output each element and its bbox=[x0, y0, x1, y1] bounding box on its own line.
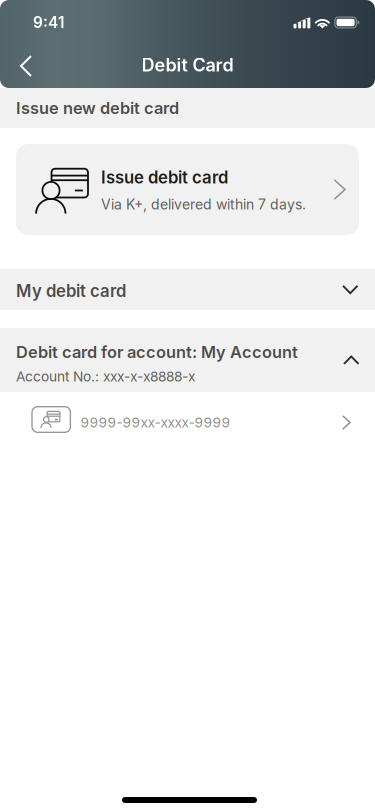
button[interactable]: Back bbox=[4, 44, 48, 88]
staticText: Account No.: xxx-x-x8888-x bbox=[16, 368, 195, 385]
staticText: Issue new debit card bbox=[16, 98, 179, 118]
staticText: Debit Card bbox=[141, 54, 233, 76]
button[interactable]: My debit card bbox=[0, 269, 375, 310]
staticText: 9:41 bbox=[33, 13, 64, 32]
staticText: Via K+, delivered within 7 days. bbox=[101, 196, 306, 213]
staticText: Issue debit card bbox=[101, 167, 228, 188]
staticText: Debit card for account: My Account bbox=[16, 342, 298, 362]
staticText: 9999-99xx-xxxx-9999 bbox=[80, 414, 230, 431]
button[interactable]: Debit card for account: My Account bbox=[0, 328, 375, 392]
button[interactable]: Issue debit card bbox=[16, 144, 359, 235]
button[interactable]: 9999-99xx-xxxx-9999 bbox=[0, 392, 375, 449]
staticText: My debit card bbox=[16, 281, 126, 301]
